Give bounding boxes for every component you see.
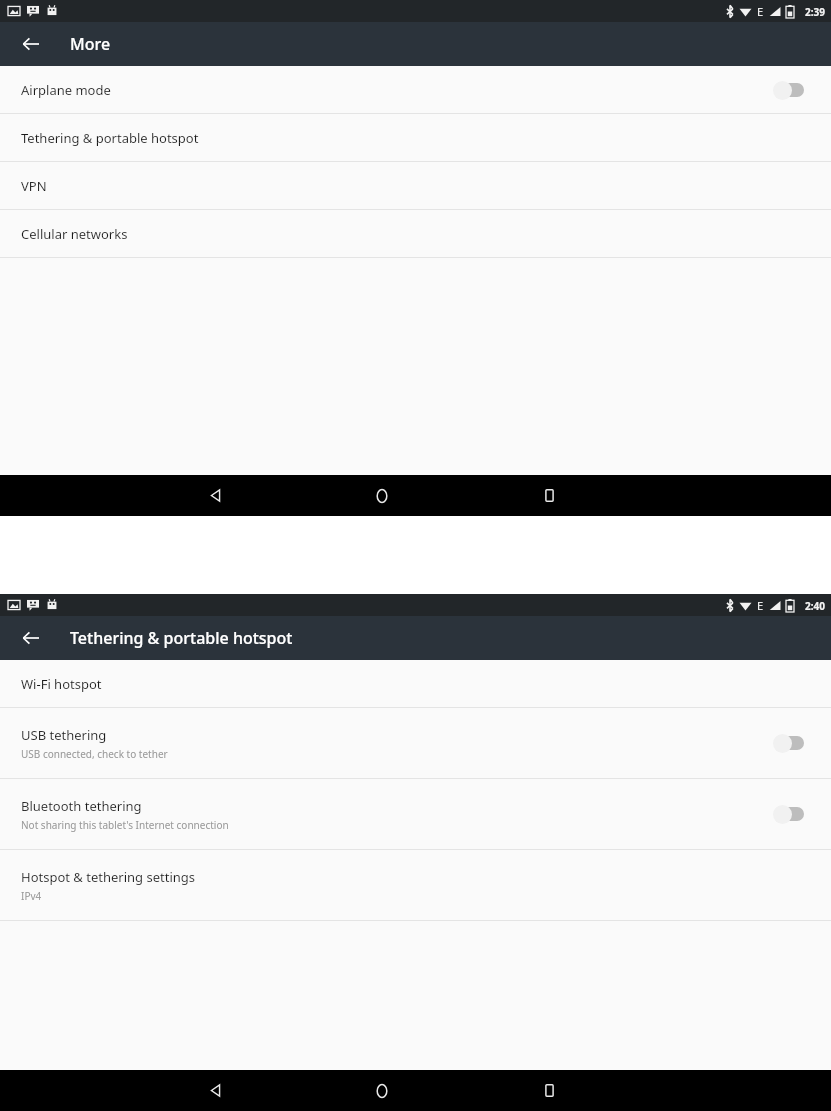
staticText: USB tethering — [21, 726, 107, 744]
staticText: 2:40 — [805, 599, 825, 613]
button[interactable]: Bluetooth tethering — [0, 779, 831, 849]
staticText: Wi-Fi hotspot — [21, 675, 102, 693]
button[interactable]: Wi-Fi hotspot — [0, 660, 831, 707]
button[interactable]: Back — [14, 621, 48, 655]
staticText: Airplane mode — [21, 81, 111, 99]
button[interactable]: Recent apps — [521, 475, 577, 516]
button[interactable]: Hotspot & tethering settings — [0, 850, 831, 920]
button[interactable]: Home — [354, 1070, 410, 1111]
staticText: Bluetooth tethering — [21, 797, 142, 815]
button[interactable]: USB tethering — [0, 708, 831, 778]
button[interactable]: Tethering & portable hotspot — [0, 114, 831, 161]
staticText: Hotspot & tethering settings — [21, 868, 196, 886]
button[interactable]: Home — [354, 475, 410, 516]
staticText: Cellular networks — [21, 225, 128, 243]
staticText: E — [757, 4, 764, 19]
button[interactable]: Cellular networks — [0, 210, 831, 257]
staticText: USB connected, check to tether — [21, 747, 168, 761]
staticText: E — [757, 598, 764, 613]
staticText: Tethering & portable hotspot — [21, 129, 199, 147]
staticText: VPN — [21, 177, 47, 195]
staticText: More — [70, 33, 111, 55]
button[interactable]: Back — [187, 1070, 243, 1111]
button[interactable]: Airplane mode — [0, 66, 831, 113]
button[interactable]: Recent apps — [521, 1070, 577, 1111]
staticText: Tethering & portable hotspot — [70, 627, 293, 649]
staticText: IPv4 — [21, 889, 42, 903]
button[interactable]: VPN — [0, 162, 831, 209]
button[interactable]: Back — [187, 475, 243, 516]
button[interactable]: Back — [14, 27, 48, 61]
staticText: 2:39 — [805, 5, 825, 19]
staticText: Not sharing this tablet's Internet conne… — [21, 818, 229, 832]
